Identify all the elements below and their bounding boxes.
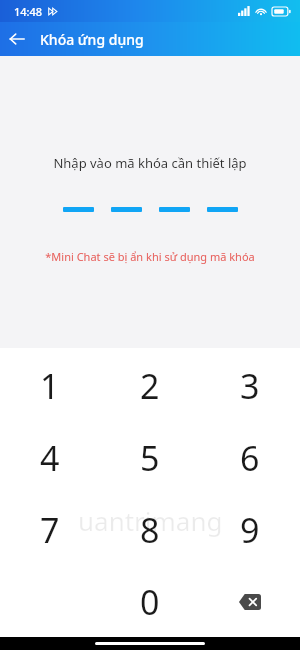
staticText: 6 — [240, 435, 260, 481]
button[interactable]: 3 — [200, 350, 300, 422]
button[interactable]: 2 — [100, 350, 200, 422]
button[interactable]: Back — [0, 22, 34, 56]
button[interactable]: 6 — [200, 422, 300, 494]
staticText: 2 — [140, 363, 160, 409]
staticText: 7 — [40, 507, 60, 553]
button[interactable]: 1 — [0, 350, 100, 422]
button[interactable]: 4 — [0, 422, 100, 494]
staticText: 5 — [140, 435, 160, 481]
button[interactable]: 0 — [100, 566, 200, 637]
button[interactable]: 9 — [200, 494, 300, 566]
button[interactable]: 8 — [100, 494, 200, 566]
button[interactable]: 7 — [0, 494, 100, 566]
staticText: 0 — [140, 579, 160, 625]
staticText: 3 — [240, 363, 260, 409]
staticText: 9 — [240, 507, 260, 553]
staticText: 8 — [140, 507, 160, 553]
staticText: Nhập vào mã khóa cần thiết lập — [53, 154, 247, 172]
staticText: 4 — [40, 435, 60, 481]
staticText: 1 — [40, 363, 60, 409]
staticText: *Mini Chat sẽ bị ẩn khi sử dụng mã khóa — [45, 249, 255, 264]
staticText: Khóa ứng dụng — [40, 30, 144, 49]
staticText: uantrimang — [78, 503, 223, 538]
staticText: 14:48 — [14, 4, 43, 19]
button[interactable]: Backspace — [200, 566, 300, 637]
button[interactable]: 5 — [100, 422, 200, 494]
